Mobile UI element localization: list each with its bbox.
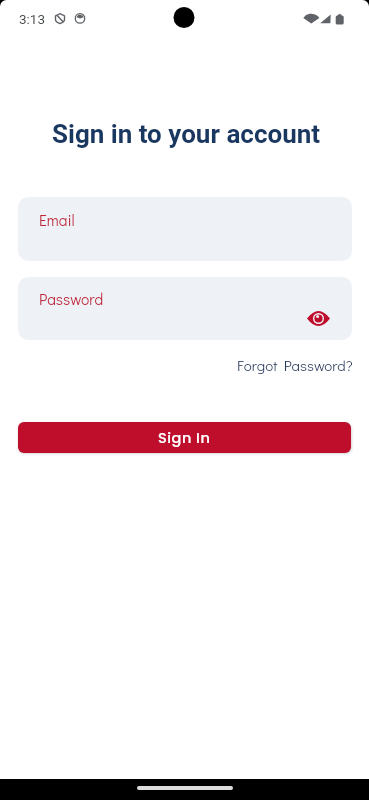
button[interactable]: Password <box>18 277 352 340</box>
button[interactable]: Forgot Password? <box>237 355 353 375</box>
button[interactable]: Sign In <box>18 422 351 453</box>
button[interactable]: Email <box>18 197 352 261</box>
staticText: Sign in to your account <box>52 119 321 149</box>
staticText: Sign In <box>158 428 211 448</box>
staticText: 3:13 <box>19 11 46 27</box>
staticText: Email <box>39 210 75 230</box>
staticText: Forgot Password? <box>237 355 353 375</box>
button[interactable] <box>298 300 338 336</box>
staticText: Password <box>39 289 104 309</box>
